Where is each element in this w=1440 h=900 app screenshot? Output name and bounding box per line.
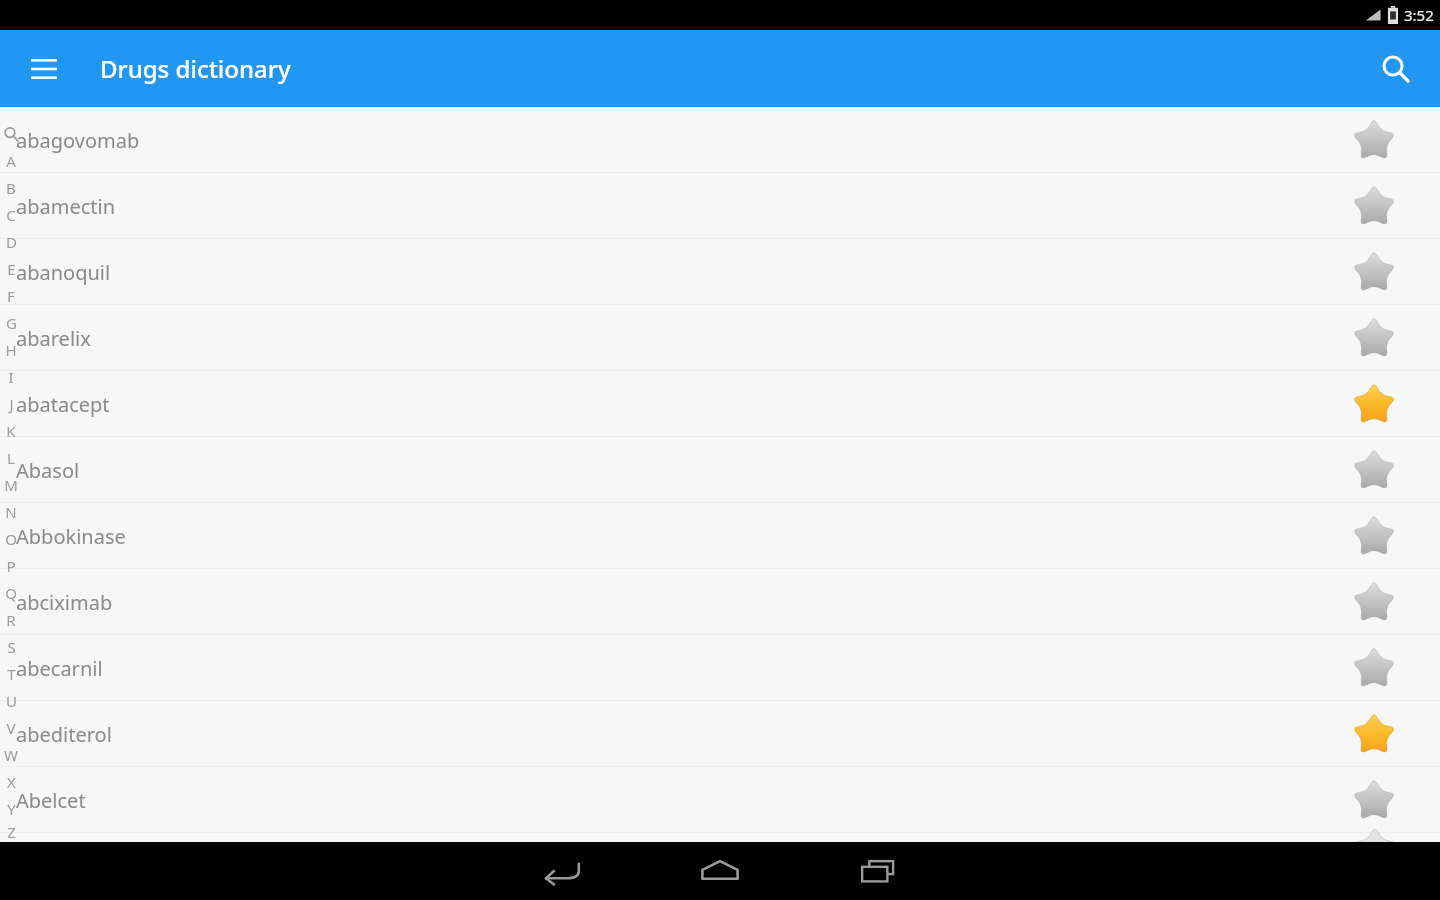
button[interactable]: abamectin [0,173,1440,239]
button[interactable]: E [0,255,24,282]
button[interactable]: Remove abediterol from favourites [1348,708,1400,760]
staticText: Y [7,799,16,819]
button[interactable]: Remove abatacept from favourites [1348,378,1400,430]
staticText: O [5,529,17,549]
button[interactable]: Add abecarnil to favourites [1348,642,1400,694]
staticText: T [7,664,16,684]
button[interactable]: U [0,687,24,714]
staticText: W [4,745,18,765]
button[interactable]: J [0,390,24,417]
button[interactable]: H [0,336,24,363]
button[interactable]: abagovomab [0,107,1440,173]
staticText: L [7,448,15,468]
button[interactable]: M [0,471,24,498]
button[interactable]: D [0,228,24,255]
staticText: R [6,610,16,630]
staticText: J [9,394,14,414]
staticText: M [4,475,18,495]
button[interactable]: Recent apps [823,846,933,896]
staticText: C [6,205,16,225]
button[interactable]: W [0,741,24,768]
button[interactable]: Z [0,822,24,842]
staticText: N [5,502,17,522]
button[interactable]: V [0,714,24,741]
button[interactable]: abatacept [0,371,1440,437]
button[interactable]: Add Abbokinase to favourites [1348,510,1400,562]
button[interactable]: abciximab [0,569,1440,635]
staticText: X [7,772,16,792]
staticText: D [6,232,17,252]
button[interactable]: A [0,147,24,174]
staticText: G [6,313,17,333]
button[interactable]: abarelix [0,305,1440,371]
button[interactable]: abecarnil [0,635,1440,701]
staticText: K [6,421,16,441]
button[interactable]: Add Abasol to favourites [1348,444,1400,496]
button[interactable]: S [0,633,24,660]
button[interactable]: Search [1368,41,1424,97]
button[interactable]: C [0,201,24,228]
staticText: H [5,340,17,360]
staticText: abanoquil [16,259,111,286]
button[interactable]: L [0,444,24,471]
staticText: abecarnil [16,655,103,682]
button[interactable]: Add abarelix to favourites [1348,312,1400,364]
staticText: P [6,556,16,576]
button[interactable]: Add abagovomab to favourites [1348,114,1400,166]
staticText: Abelcet [16,787,86,814]
button[interactable]: X [0,768,24,795]
button[interactable]: Add Abelcet to favourites [1348,774,1400,826]
staticText: A [6,151,16,171]
button[interactable]: Abasol [0,437,1440,503]
button[interactable]: abediterol [0,701,1440,767]
button[interactable]: G [0,309,24,336]
staticText: abciximab [16,589,113,616]
staticText: F [7,286,15,306]
button[interactable]: Add abciximab to favourites [1348,576,1400,628]
staticText: abediterol [16,721,112,748]
staticText: abatacept [16,391,110,418]
button[interactable]: Abelcet [0,767,1440,833]
staticText: E [7,259,16,279]
button[interactable]: R [0,606,24,633]
button[interactable]: Abbokinase [0,503,1440,569]
button[interactable]: Y [0,795,24,822]
staticText: Abasol [16,457,80,484]
button[interactable]: Home [665,846,775,896]
staticText: abamectin [16,193,116,220]
button[interactable]: I [0,363,24,390]
button[interactable]: Open navigation drawer [18,43,70,95]
button[interactable]: N [0,498,24,525]
staticText: abarelix [16,325,91,352]
button[interactable]: Q [0,579,24,606]
button[interactable]: B [0,174,24,201]
staticText: abagovomab [16,127,140,154]
staticText: Abbokinase [16,523,126,550]
button[interactable]: F [0,282,24,309]
staticText: Q [5,583,17,603]
staticText: B [6,178,16,198]
staticText: 3:52 [1404,5,1434,25]
button[interactable]: K [0,417,24,444]
button[interactable]: T [0,660,24,687]
staticText: U [6,691,17,711]
staticText: Drugs dictionary [100,52,291,85]
button[interactable]: Add abanoquil to favourites [1348,246,1400,298]
staticText: V [6,718,16,738]
button[interactable]: Add abamectin to favourites [1348,180,1400,232]
button[interactable] [0,833,1440,842]
staticText: I [8,367,14,387]
button[interactable]: Back [507,846,617,896]
button[interactable]: P [0,552,24,579]
button[interactable]: O [0,525,24,552]
staticText: S [7,637,16,657]
button[interactable]: abanoquil [0,239,1440,305]
staticText: Z [7,822,16,842]
button[interactable]: Search index [0,121,24,147]
